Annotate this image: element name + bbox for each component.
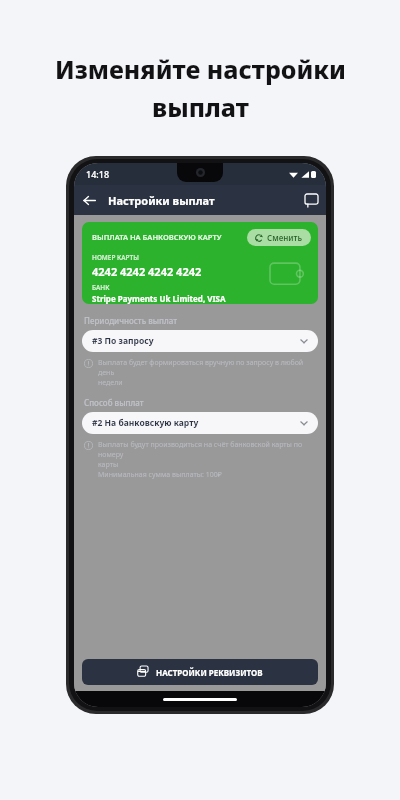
staticText: НАСТРОЙКИ РЕКВИЗИТОВ xyxy=(156,667,263,678)
staticText: выплат xyxy=(152,90,249,124)
staticText: БАНК xyxy=(92,283,110,292)
staticText: Сменить xyxy=(267,232,303,243)
button[interactable]: НАСТРОЙКИ РЕКВИЗИТОВ xyxy=(82,659,318,685)
staticText: Выплата будет формироваться вручную по з… xyxy=(98,358,318,378)
staticText: Способ выплат xyxy=(84,397,144,408)
staticText: карты xyxy=(98,460,119,470)
staticText: 14:18 xyxy=(86,168,110,180)
staticText: Настройки выплат xyxy=(108,193,215,208)
staticText: НОМЕР КАРТЫ xyxy=(92,253,139,262)
staticText: #2 На банковскую карту xyxy=(92,417,199,429)
button[interactable]: Chat xyxy=(296,185,326,215)
staticText: #3 По запросу xyxy=(92,335,154,347)
staticText: Stripe Payments Uk Limited, VISA xyxy=(92,293,226,304)
staticText: Выплаты будут производиться на счёт банк… xyxy=(98,440,318,460)
button[interactable]: #3 По запросу xyxy=(82,330,318,352)
staticText: Изменяйте настройки xyxy=(55,52,346,86)
staticText: Минимальная сумма выплаты: 100₽ xyxy=(98,470,222,480)
button[interactable]: #2 На банковскую карту xyxy=(82,412,318,434)
button[interactable]: Сменить xyxy=(247,229,311,246)
staticText: Периодичность выплат xyxy=(84,315,178,326)
staticText: ВЫПЛАТА НА БАНКОВСКУЮ КАРТУ xyxy=(92,232,222,242)
staticText: 4242 4242 4242 4242 xyxy=(92,264,202,279)
staticText: недели xyxy=(98,378,123,388)
button[interactable]: Back xyxy=(74,185,104,215)
